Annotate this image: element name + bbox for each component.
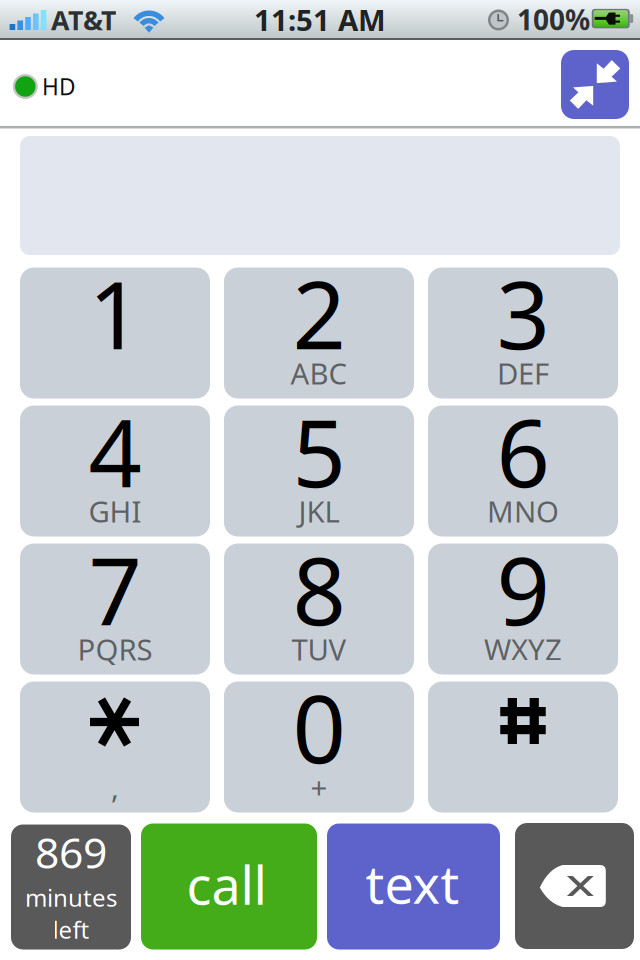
button[interactable]: text (327, 823, 500, 949)
staticText: 8 (292, 527, 345, 651)
button[interactable]: call (141, 823, 317, 949)
staticText: JKL (298, 491, 339, 530)
button[interactable]: 4 (20, 405, 210, 536)
staticText: 3 (496, 251, 549, 375)
button[interactable]: 6 (428, 405, 618, 536)
button[interactable]: 869 (11, 824, 131, 949)
button[interactable]: 0 (224, 681, 414, 812)
button[interactable]: Delete (515, 823, 634, 949)
staticText: left (52, 914, 89, 945)
button[interactable]: 2 (224, 267, 414, 398)
staticText: AT&T (51, 2, 116, 38)
staticText: + (310, 767, 327, 806)
staticText: 100% (517, 1, 590, 38)
staticText: 1 (88, 251, 141, 375)
staticText: 869 (35, 824, 107, 880)
button[interactable]: Collapse dialer (561, 50, 629, 119)
staticText: TUV (291, 629, 346, 668)
staticText: minutes (25, 882, 117, 913)
staticText: WXYZ (484, 629, 562, 668)
staticText: call (186, 850, 266, 919)
button[interactable]: 7 (20, 543, 210, 674)
staticText: PQRS (77, 629, 152, 668)
button[interactable]: 9 (428, 543, 618, 674)
staticText: , (111, 767, 119, 806)
staticText: DEF (497, 353, 549, 392)
staticText: 2 (292, 251, 345, 375)
button[interactable]: , (20, 681, 210, 812)
staticText: 6 (496, 389, 549, 513)
button[interactable]: 5 (224, 405, 414, 536)
staticText: MNO (487, 491, 559, 530)
staticText: 9 (496, 527, 549, 651)
button[interactable]: 8 (224, 543, 414, 674)
button[interactable]: 3 (428, 267, 618, 398)
staticText: 0 (292, 665, 345, 789)
staticText: ABC (290, 353, 347, 392)
button[interactable] (428, 681, 618, 812)
staticText: HD (42, 71, 76, 101)
staticText: 7 (88, 527, 141, 651)
staticText: GHI (88, 491, 141, 530)
button[interactable]: 1 (20, 267, 210, 398)
staticText: 5 (292, 389, 345, 513)
staticText: 4 (88, 389, 141, 513)
staticText: 11:51 AM (254, 0, 386, 39)
staticText: text (365, 849, 459, 918)
